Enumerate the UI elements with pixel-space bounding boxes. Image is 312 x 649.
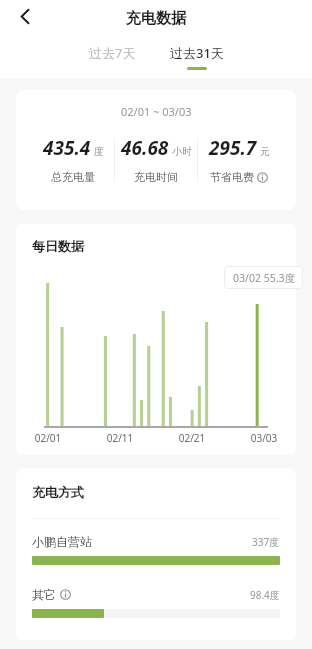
staticText: 充电数据 — [126, 9, 186, 28]
staticText: 度 — [94, 145, 104, 158]
button[interactable]: 过去31天 — [153, 38, 241, 76]
staticText: 03/02 55.3度 — [233, 271, 295, 285]
staticText: 03/03 — [242, 431, 286, 445]
button[interactable]: 其它 — [32, 587, 280, 602]
staticText: 元 — [260, 145, 270, 158]
button[interactable] — [0, 0, 44, 36]
staticText: 337度 — [252, 535, 280, 549]
staticText: 其它 — [32, 587, 56, 602]
staticText: 每日数据 — [32, 238, 84, 254]
staticText: 过去7天 — [89, 44, 136, 62]
button[interactable]: 过去7天 — [72, 38, 153, 68]
staticText: 02/01 ~ 03/03 — [121, 104, 192, 119]
staticText: 02/11 — [98, 431, 142, 445]
button[interactable]: 小鹏自营站 — [32, 534, 280, 549]
staticText: 节省电费 — [210, 170, 254, 184]
staticText: 435.4 — [43, 135, 91, 161]
staticText: 充电方式 — [32, 484, 84, 500]
staticText: 过去31天 — [170, 44, 224, 62]
staticText: 小时 — [172, 145, 192, 158]
staticText: 98.4度 — [250, 588, 280, 602]
staticText: 02/01 — [26, 431, 70, 445]
staticText: 295.7 — [209, 135, 257, 161]
staticText: 总充电量 — [51, 170, 95, 184]
staticText: 小鹏自营站 — [32, 534, 92, 549]
staticText: 充电时间 — [134, 170, 178, 184]
staticText: 02/21 — [170, 431, 214, 445]
staticText: 46.68 — [121, 135, 169, 161]
